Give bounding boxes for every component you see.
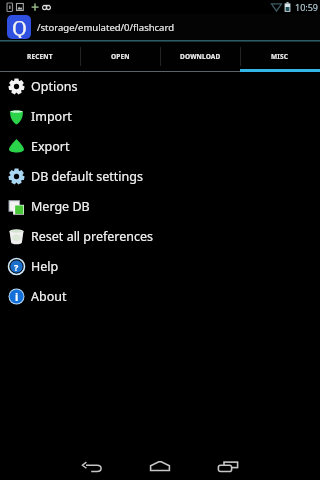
staticText: DB default settings	[31, 168, 143, 185]
staticText: Q	[12, 15, 27, 38]
button[interactable]: OPEN	[80, 42, 160, 72]
button[interactable]: Merge DB	[0, 191, 320, 221]
button[interactable]: DB default settings	[0, 161, 320, 191]
button[interactable]: Back	[58, 444, 126, 480]
staticText: ?	[14, 261, 19, 273]
staticText: Help	[31, 258, 59, 275]
staticText: RECENT	[27, 52, 53, 61]
button[interactable]: Options	[0, 71, 320, 101]
staticText: OPEN	[111, 52, 130, 61]
button[interactable]: Home	[126, 444, 194, 480]
button[interactable]: ?	[0, 251, 320, 281]
staticText: /storage/emulated/0/flashcard	[37, 21, 175, 34]
staticText: About	[31, 288, 67, 305]
button[interactable]: RECENT	[0, 42, 80, 72]
button[interactable]: i	[0, 281, 320, 311]
button[interactable]: Import	[0, 101, 320, 131]
staticText: MISC	[271, 52, 289, 61]
staticText: Reset all preferences	[31, 228, 154, 245]
staticText: DOWNLOAD	[180, 52, 221, 61]
staticText: 10:59	[295, 1, 319, 13]
button[interactable]: MISC	[240, 42, 320, 72]
button[interactable]: DOWNLOAD	[160, 42, 240, 72]
button[interactable]: App icon	[7, 15, 31, 39]
staticText: Import	[31, 108, 72, 125]
staticText: Export	[31, 138, 70, 155]
button[interactable]: Recent apps	[194, 444, 262, 480]
button[interactable]: Reset all preferences	[0, 221, 320, 251]
button[interactable]: Export	[0, 131, 320, 161]
staticText: i	[15, 289, 19, 304]
staticText: Merge DB	[31, 198, 90, 215]
staticText: Options	[31, 78, 78, 95]
